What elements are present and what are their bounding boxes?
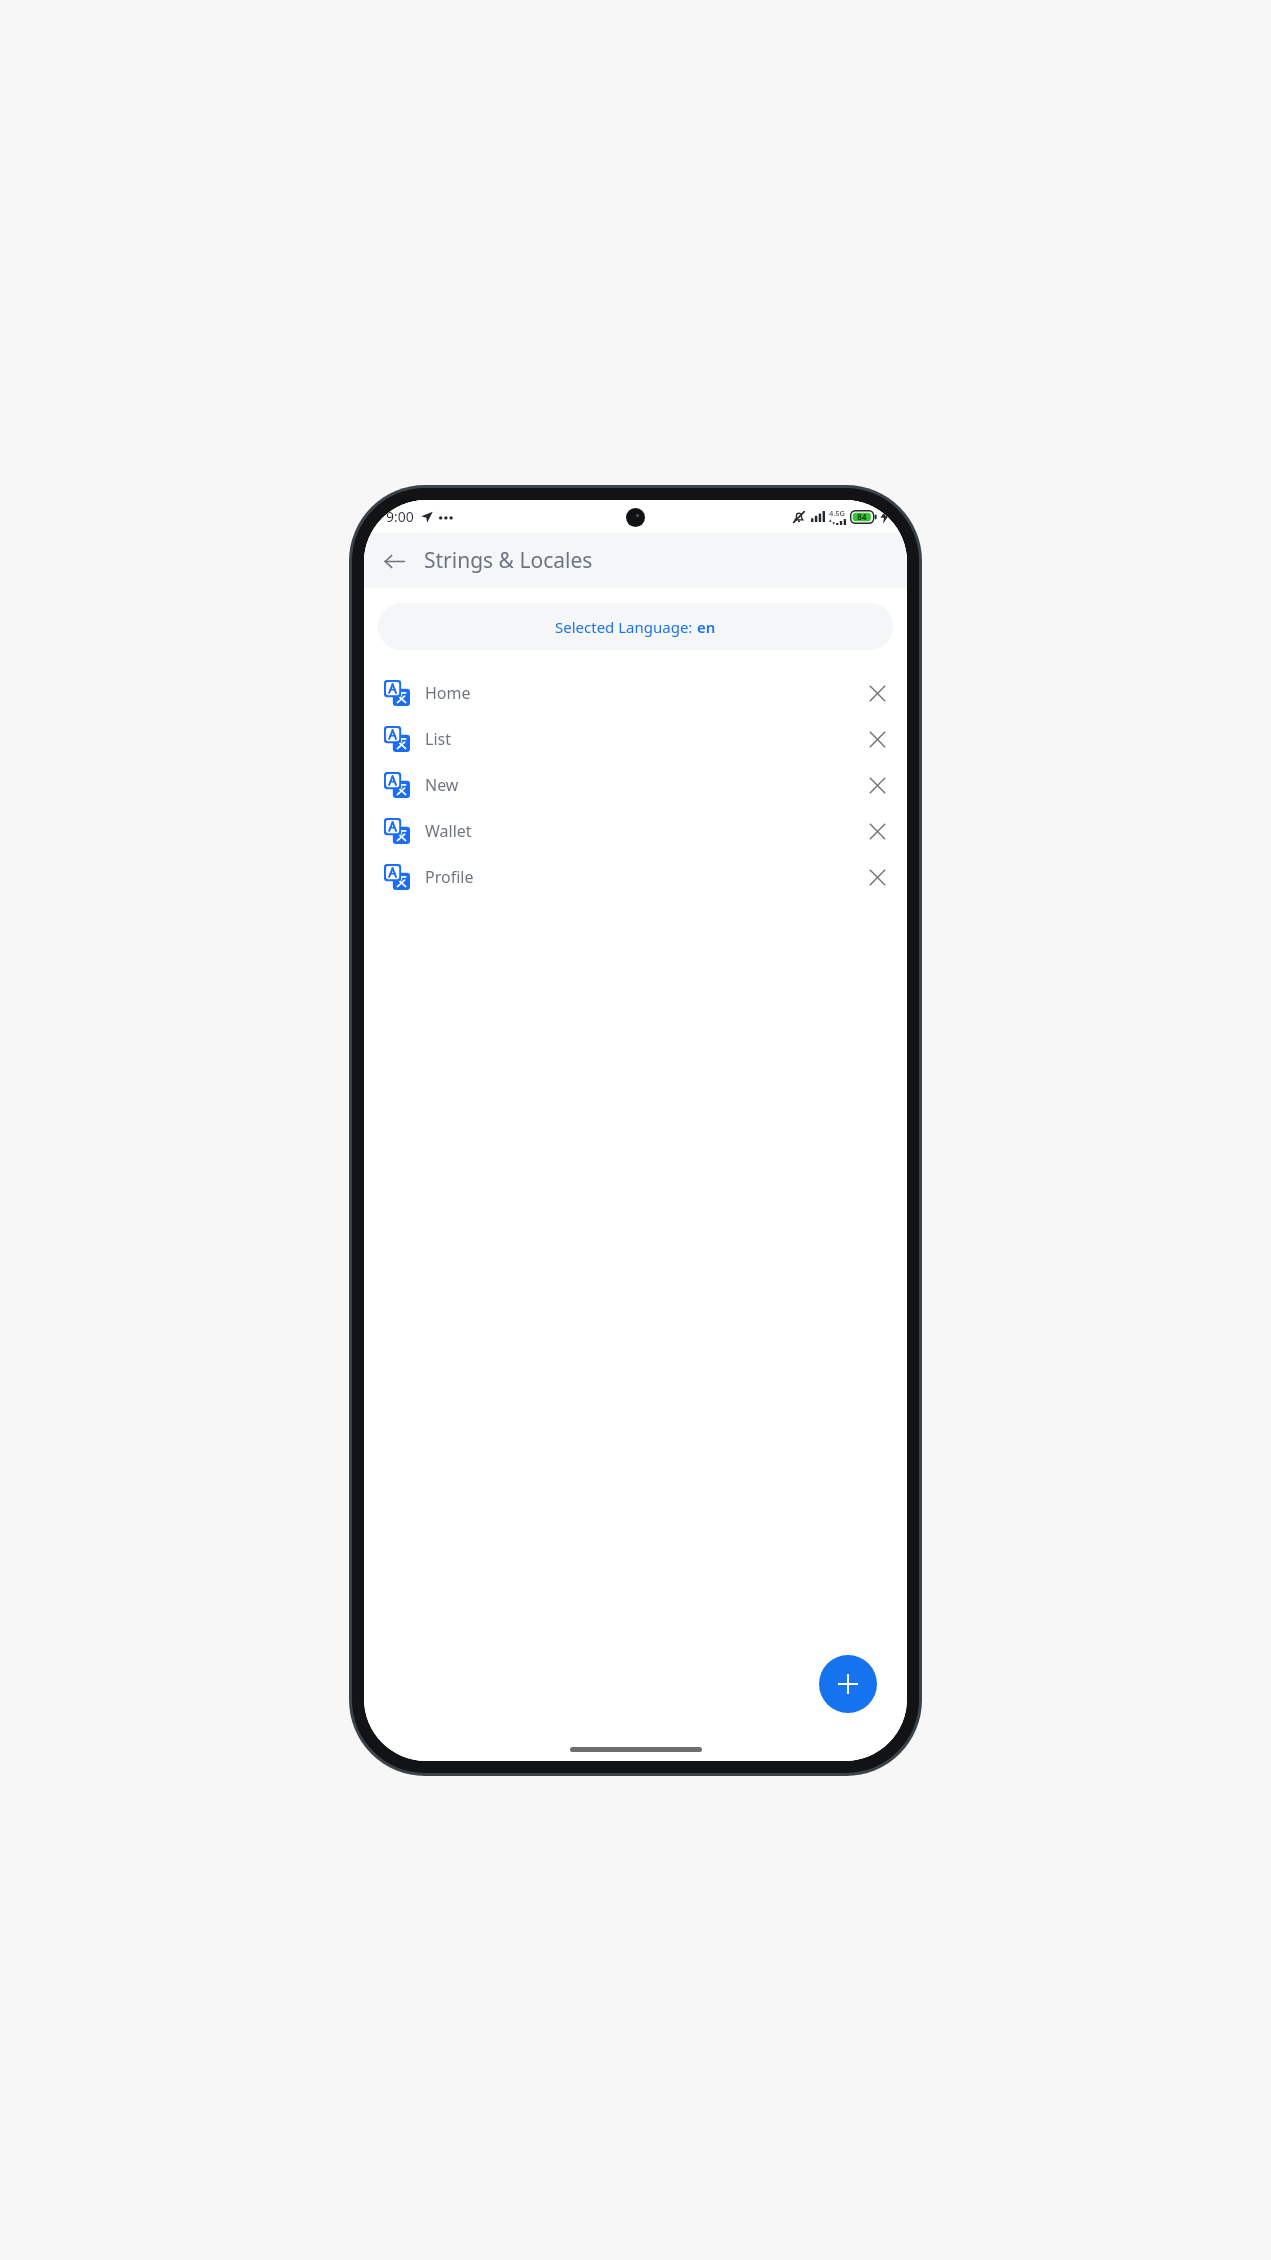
button[interactable]: New xyxy=(364,762,907,808)
button[interactable]: Remove New xyxy=(857,765,897,805)
button[interactable]: Wallet xyxy=(364,808,907,854)
staticText: Profile xyxy=(425,866,857,888)
button[interactable]: Remove Profile xyxy=(857,857,897,897)
staticText: 4.5G xyxy=(829,508,846,518)
staticText: Home xyxy=(425,682,857,704)
button[interactable]: Add string xyxy=(819,1655,877,1713)
button[interactable]: Home xyxy=(364,670,907,716)
staticText: Strings & Locales xyxy=(424,546,593,575)
button[interactable]: Selected Language: xyxy=(378,603,893,650)
button[interactable]: List xyxy=(364,716,907,762)
staticText: New xyxy=(425,774,857,796)
staticText: Wallet xyxy=(425,820,857,842)
button[interactable]: Remove Wallet xyxy=(857,811,897,851)
staticText: 84 xyxy=(857,511,867,523)
button[interactable]: Remove List xyxy=(857,719,897,759)
button[interactable]: Remove Home xyxy=(857,673,897,713)
button[interactable]: Profile xyxy=(364,854,907,900)
staticText: Selected Language: xyxy=(555,617,697,637)
button[interactable]: Back xyxy=(372,539,416,583)
staticText: en xyxy=(697,617,716,637)
staticText: 9:00 xyxy=(386,507,414,526)
staticText: List xyxy=(425,728,857,750)
